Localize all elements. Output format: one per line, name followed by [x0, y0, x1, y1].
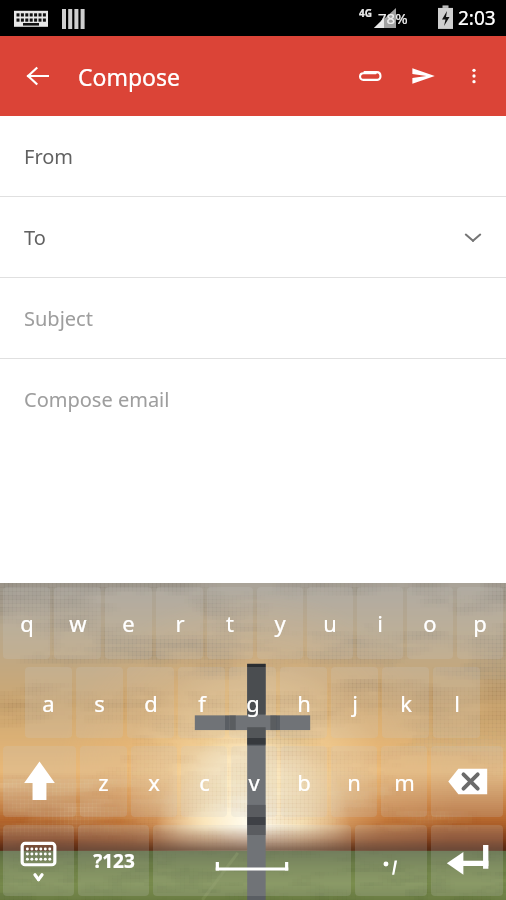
staticText: h	[297, 688, 311, 718]
button[interactable]: n	[331, 746, 377, 817]
button[interactable]: v	[231, 746, 277, 817]
button[interactable]: From	[0, 116, 506, 196]
button[interactable]: t	[207, 587, 253, 659]
button[interactable]: i	[357, 587, 403, 659]
staticText: 78%	[378, 8, 408, 28]
button[interactable]: b	[281, 746, 327, 817]
staticText: b	[297, 767, 311, 797]
staticText: 2:03	[458, 5, 496, 31]
staticText: Subject	[24, 305, 93, 332]
staticText: w	[69, 608, 87, 638]
button[interactable]: p	[457, 587, 503, 659]
button[interactable]: More options	[450, 52, 498, 100]
staticText: Compose email	[24, 386, 170, 413]
staticText: v	[248, 767, 260, 797]
staticText: z	[98, 767, 109, 797]
staticText: f	[198, 688, 206, 718]
staticText: i	[377, 608, 383, 638]
staticText: d	[144, 688, 158, 718]
staticText: m	[394, 767, 415, 797]
button[interactable]: Back	[12, 50, 64, 102]
button[interactable]: h	[280, 667, 327, 738]
staticText: From	[24, 143, 74, 170]
button[interactable]: Send	[396, 49, 450, 103]
staticText: g	[246, 688, 260, 718]
staticText: c	[199, 767, 210, 797]
staticText: l	[454, 688, 460, 718]
staticText: n	[347, 767, 361, 797]
button[interactable]: To	[0, 197, 506, 277]
staticText: To	[24, 224, 46, 251]
staticText: s	[94, 688, 105, 718]
staticText: j	[352, 688, 358, 718]
button[interactable]: g	[229, 667, 276, 738]
button[interactable]: u	[307, 587, 353, 659]
button[interactable]: k	[382, 667, 429, 738]
staticText: p	[473, 608, 487, 638]
staticText: ?123	[93, 848, 135, 874]
button[interactable]: r	[156, 587, 203, 659]
button[interactable]: o	[407, 587, 453, 659]
button[interactable]: q	[3, 587, 50, 659]
button[interactable]: j	[331, 667, 378, 738]
staticText: a	[42, 688, 55, 718]
button[interactable]: Hide keyboard	[3, 825, 74, 896]
staticText: x	[148, 767, 160, 797]
button[interactable]: Enter	[431, 825, 503, 896]
button[interactable]: Shift	[3, 746, 76, 817]
staticText: k	[400, 688, 412, 718]
button[interactable]: z	[80, 746, 127, 817]
button[interactable]: l	[433, 667, 480, 738]
button[interactable]: Attach file	[342, 49, 396, 103]
staticText: 4G	[359, 6, 372, 20]
button[interactable]: Subject	[0, 278, 506, 358]
button[interactable]: m	[381, 746, 427, 817]
staticText: e	[122, 608, 135, 638]
staticText: o	[423, 608, 437, 638]
staticText: q	[20, 608, 34, 638]
button[interactable]: f	[178, 667, 225, 738]
button[interactable]: e	[105, 587, 152, 659]
staticText: r	[175, 608, 185, 638]
button[interactable]: Space	[153, 825, 351, 896]
staticText: u	[323, 608, 337, 638]
button[interactable]: ?123	[78, 825, 149, 896]
button[interactable]: w	[54, 587, 101, 659]
button[interactable]: s	[76, 667, 123, 738]
staticText: y	[274, 608, 286, 638]
staticText: t	[226, 608, 234, 638]
button[interactable]: c	[181, 746, 227, 817]
button[interactable]: y	[257, 587, 303, 659]
button[interactable]: a	[25, 667, 72, 738]
button[interactable]: Period and comma	[355, 825, 427, 896]
staticText: Compose	[78, 61, 181, 92]
button[interactable]: x	[131, 746, 177, 817]
button[interactable]: Backspace	[431, 746, 503, 817]
button[interactable]: d	[127, 667, 174, 738]
button[interactable]: Compose email	[0, 359, 506, 439]
